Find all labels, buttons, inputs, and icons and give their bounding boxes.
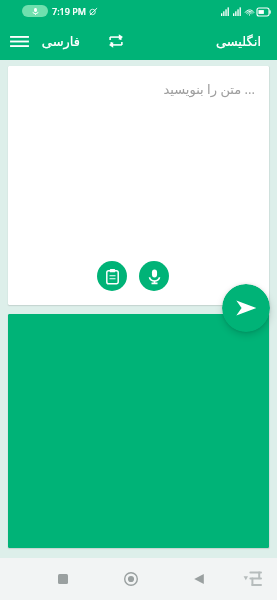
button[interactable]: Paste from clipboard xyxy=(97,261,127,291)
button[interactable]: Translate xyxy=(222,284,270,332)
button[interactable]: Voice input xyxy=(139,261,169,291)
button[interactable]: Recent apps xyxy=(45,561,81,597)
button[interactable]: Back xyxy=(181,561,217,597)
staticText: انگلیسی xyxy=(215,34,261,49)
button[interactable]: متن را بنویسید ... xyxy=(8,66,269,305)
staticText: فارسی xyxy=(41,34,80,49)
button[interactable]: Home xyxy=(113,561,149,597)
button[interactable]: Hide keyboard xyxy=(235,562,269,596)
button[interactable]: Swap languages xyxy=(101,26,131,56)
staticText: 7:19 PM xyxy=(52,5,86,17)
button[interactable]: فارسی xyxy=(35,28,86,55)
button[interactable]: Menu xyxy=(0,22,38,60)
button[interactable]: انگلیسی xyxy=(209,28,267,55)
staticText: متن را بنویسید ... xyxy=(163,80,255,98)
